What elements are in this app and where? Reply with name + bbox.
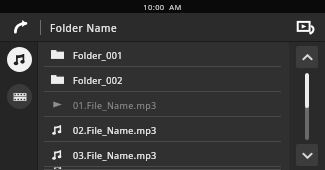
button[interactable]: Back (0, 13, 40, 42)
staticText: 02.File_Name.mp3 (73, 124, 157, 136)
button[interactable]: Video (7, 84, 32, 109)
staticText: 01.File_Name.mp3 (73, 99, 157, 111)
button[interactable]: 03.File_Name.mp3 (38, 142, 289, 167)
staticText: 10:00 AM (143, 2, 182, 12)
button[interactable]: Scroll down (296, 144, 318, 166)
button[interactable]: Folder_001 (38, 42, 289, 67)
staticText: 04.File_Name.mp3 (73, 167, 157, 170)
staticText: Folder_002 (73, 74, 123, 86)
button[interactable]: Music (7, 47, 32, 72)
staticText: 03.File_Name.mp3 (73, 149, 157, 161)
button[interactable]: Jump to now playing (287, 13, 325, 42)
staticText: Folder_001 (73, 49, 123, 61)
button[interactable]: 01.File_Name.mp3 (38, 92, 289, 117)
button[interactable]: Scroll up (296, 46, 318, 68)
staticText: Folder Name (50, 21, 118, 35)
button[interactable]: 04.File_Name.mp3 (38, 167, 289, 170)
button[interactable]: Folder_002 (38, 67, 289, 92)
button[interactable]: 02.File_Name.mp3 (38, 117, 289, 142)
